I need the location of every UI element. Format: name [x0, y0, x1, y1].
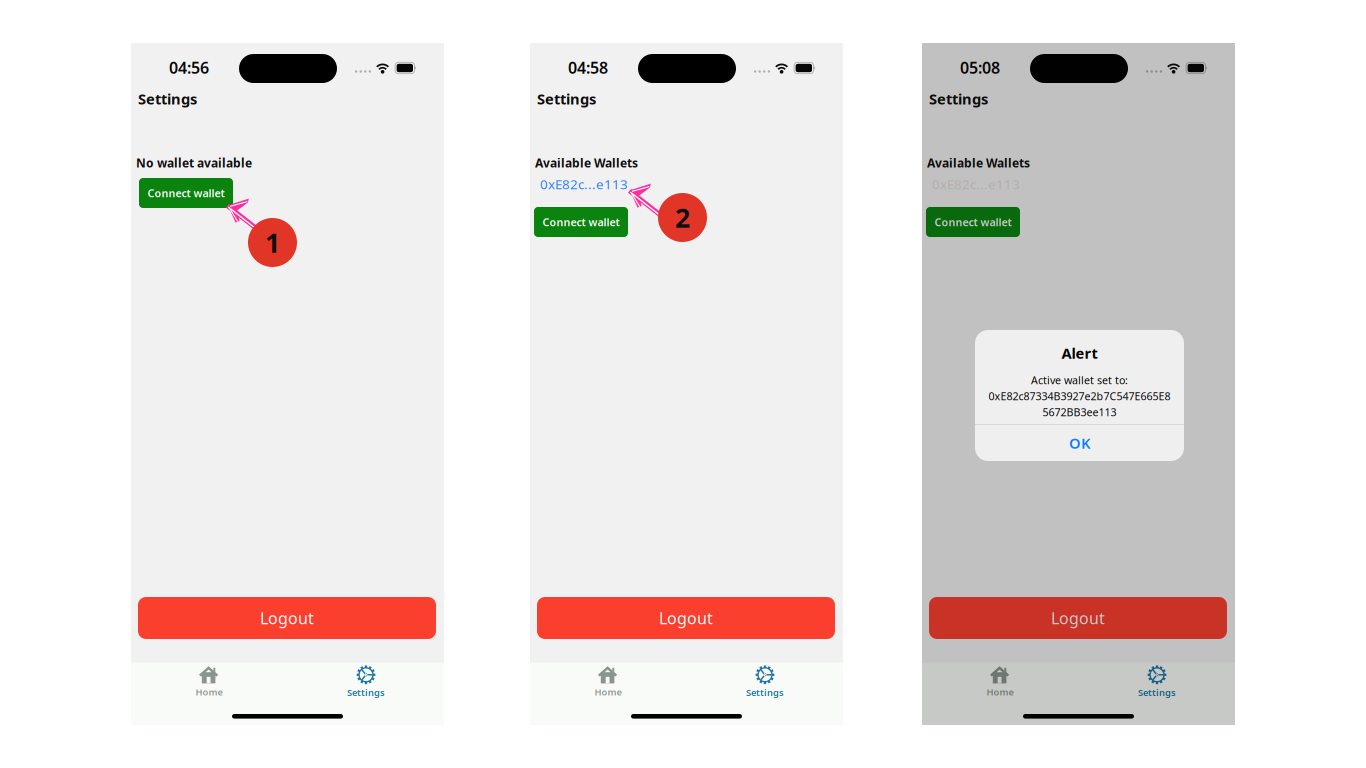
staticText: Logout — [1051, 607, 1105, 629]
staticText: Settings — [746, 686, 784, 699]
button[interactable]: Settings — [1117, 665, 1197, 699]
button[interactable]: Home — [568, 665, 648, 699]
staticText: Settings — [1138, 686, 1176, 699]
staticText: Home — [594, 686, 621, 698]
staticText: 04:58 — [568, 57, 608, 78]
staticText: No wallet available — [136, 155, 252, 171]
staticText: 0xE82c...e113 — [932, 175, 1020, 193]
staticText: Connect wallet — [147, 186, 224, 200]
button[interactable]: Connect wallet — [139, 178, 233, 208]
staticText: 1 — [265, 225, 280, 260]
staticText: Available Wallets — [927, 155, 1030, 171]
staticText: 05:08 — [960, 57, 1000, 78]
staticText: 04:56 — [169, 57, 209, 78]
staticText: 5672BB3ee113 — [1042, 405, 1116, 419]
staticText: Settings — [138, 89, 197, 108]
button[interactable]: Settings — [326, 665, 406, 699]
staticText: Logout — [659, 607, 713, 629]
button[interactable]: Settings — [725, 665, 805, 699]
button[interactable]: Logout — [138, 597, 436, 639]
button[interactable]: Home — [960, 665, 1040, 699]
staticText: Settings — [537, 89, 596, 108]
staticText: 0xE82c...e113 — [540, 175, 628, 193]
staticText: Logout — [260, 607, 314, 629]
button[interactable]: Home — [169, 665, 249, 699]
button[interactable]: Logout — [929, 597, 1227, 639]
staticText: Settings — [929, 89, 988, 108]
staticText: Home — [195, 686, 222, 698]
staticText: OK — [1069, 433, 1090, 453]
staticText: 0xE82c87334B3927e2b7C547E665E8 — [988, 389, 1170, 403]
staticText: Home — [986, 686, 1013, 698]
button[interactable]: 0xE82c...e113 — [540, 175, 628, 193]
staticText: 2 — [675, 200, 690, 235]
staticText: Connect wallet — [934, 215, 1011, 229]
staticText: Connect wallet — [542, 215, 619, 229]
button[interactable]: OK — [975, 425, 1184, 461]
staticText: Alert — [1061, 343, 1097, 363]
button[interactable]: Logout — [537, 597, 835, 639]
button[interactable]: Connect wallet — [534, 207, 628, 237]
staticText: Available Wallets — [535, 155, 638, 171]
staticText: Settings — [347, 686, 385, 699]
staticText: Active wallet set to: — [1031, 373, 1128, 387]
button[interactable]: 0xE82c...e113 — [932, 175, 1020, 193]
button[interactable]: Connect wallet — [926, 207, 1020, 237]
